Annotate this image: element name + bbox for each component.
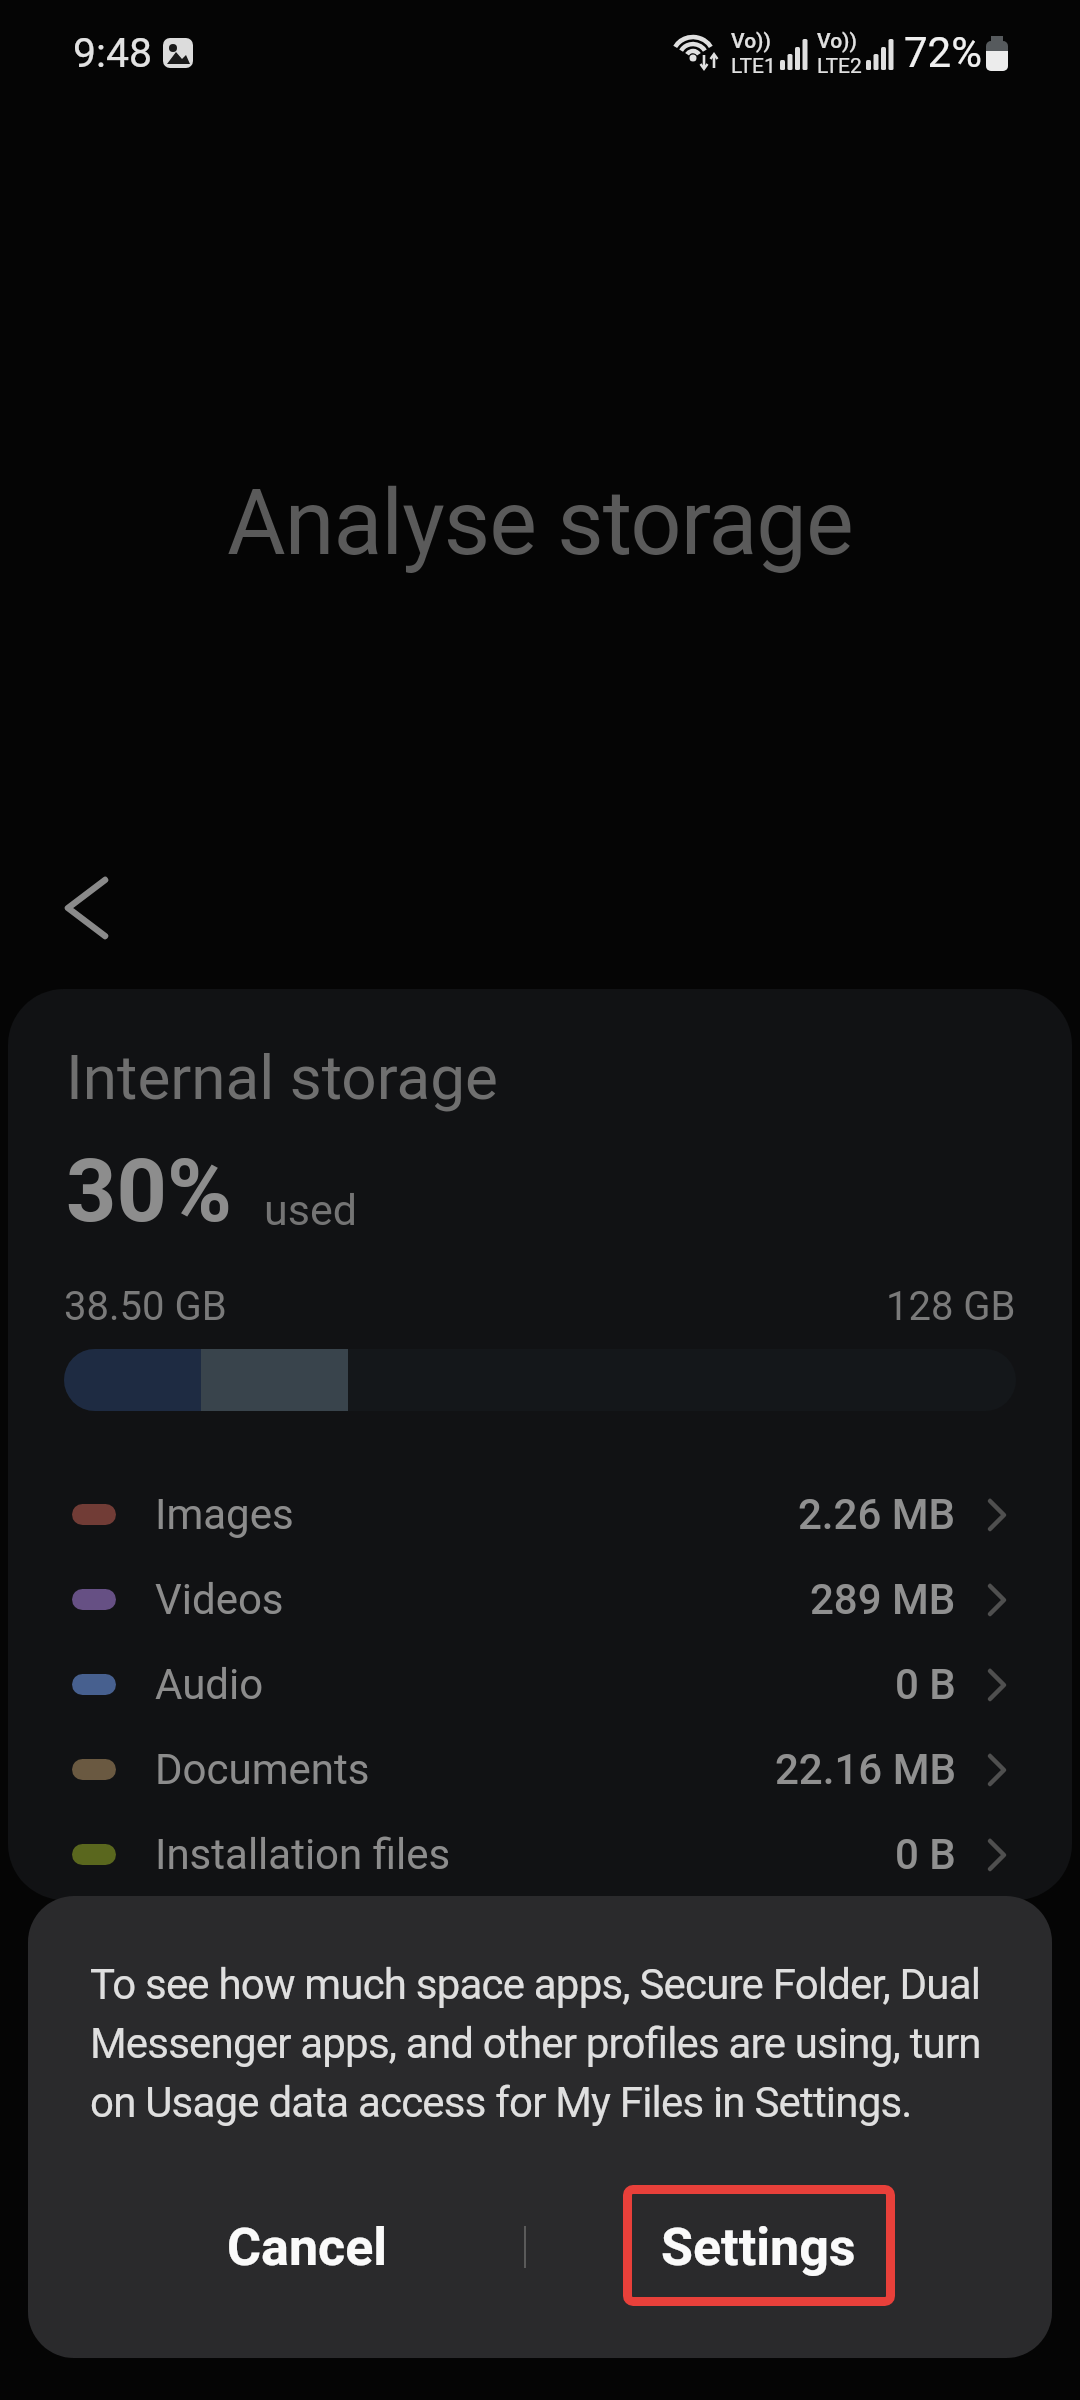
staticText: LTE2 <box>817 54 862 79</box>
staticText: 9:48 <box>73 29 153 77</box>
staticText: Internal storage <box>66 1041 498 1114</box>
staticText: Images <box>155 1490 294 1539</box>
button[interactable]: Settings <box>578 2197 938 2297</box>
staticText: LTE1 <box>731 54 776 79</box>
staticText: 128 GB <box>886 1283 1016 1330</box>
staticText: Cancel <box>227 2217 388 2278</box>
staticText: Settings <box>661 2217 856 2278</box>
staticText: Documents <box>155 1745 370 1794</box>
staticText: used <box>264 1185 357 1235</box>
staticText: Analyse storage <box>227 471 853 576</box>
staticText: Vo)) <box>731 29 771 54</box>
staticText: 2.26 MB <box>798 1490 956 1539</box>
staticText: 38.50 GB <box>64 1283 227 1330</box>
staticText: Installation files <box>155 1830 451 1879</box>
staticText: 0 B <box>895 1830 956 1879</box>
staticText: 72% <box>904 28 982 77</box>
staticText: Videos <box>155 1575 284 1624</box>
staticText: 30% <box>66 1139 232 1242</box>
button[interactable]: Videos <box>8 1557 1072 1642</box>
button[interactable]: Documents <box>8 1727 1072 1812</box>
button[interactable] <box>48 868 128 948</box>
staticText: To see how much space apps, Secure Folde… <box>90 1960 981 2127</box>
staticText: Vo)) <box>817 29 857 54</box>
button[interactable]: Images <box>8 1472 1072 1557</box>
button[interactable]: Installation files <box>8 1812 1072 1897</box>
staticText: Audio <box>155 1660 264 1709</box>
staticText: 0 B <box>895 1660 956 1709</box>
button[interactable]: Audio <box>8 1642 1072 1727</box>
button[interactable]: Cancel <box>127 2197 487 2297</box>
staticText: 22.16 MB <box>775 1745 956 1794</box>
staticText: 289 MB <box>810 1575 956 1624</box>
